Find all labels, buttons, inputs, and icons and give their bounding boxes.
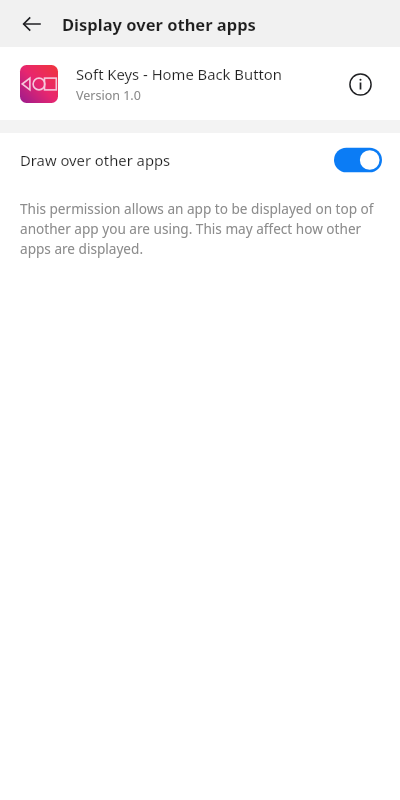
staticText: Display over other apps: [62, 13, 256, 35]
staticText: This permission allows an app to be disp…: [20, 199, 378, 258]
staticText: Soft Keys - Home Back Button: [76, 64, 282, 84]
button[interactable]: Soft Keys - Home Back Button: [0, 47, 400, 120]
button[interactable]: App info: [340, 64, 380, 104]
button[interactable]: Draw over other apps: [0, 133, 400, 187]
button[interactable]: Back: [12, 4, 52, 44]
staticText: Draw over other apps: [20, 150, 334, 170]
other: Draw over other apps toggle: [334, 145, 382, 175]
staticText: Version 1.0: [76, 87, 141, 104]
